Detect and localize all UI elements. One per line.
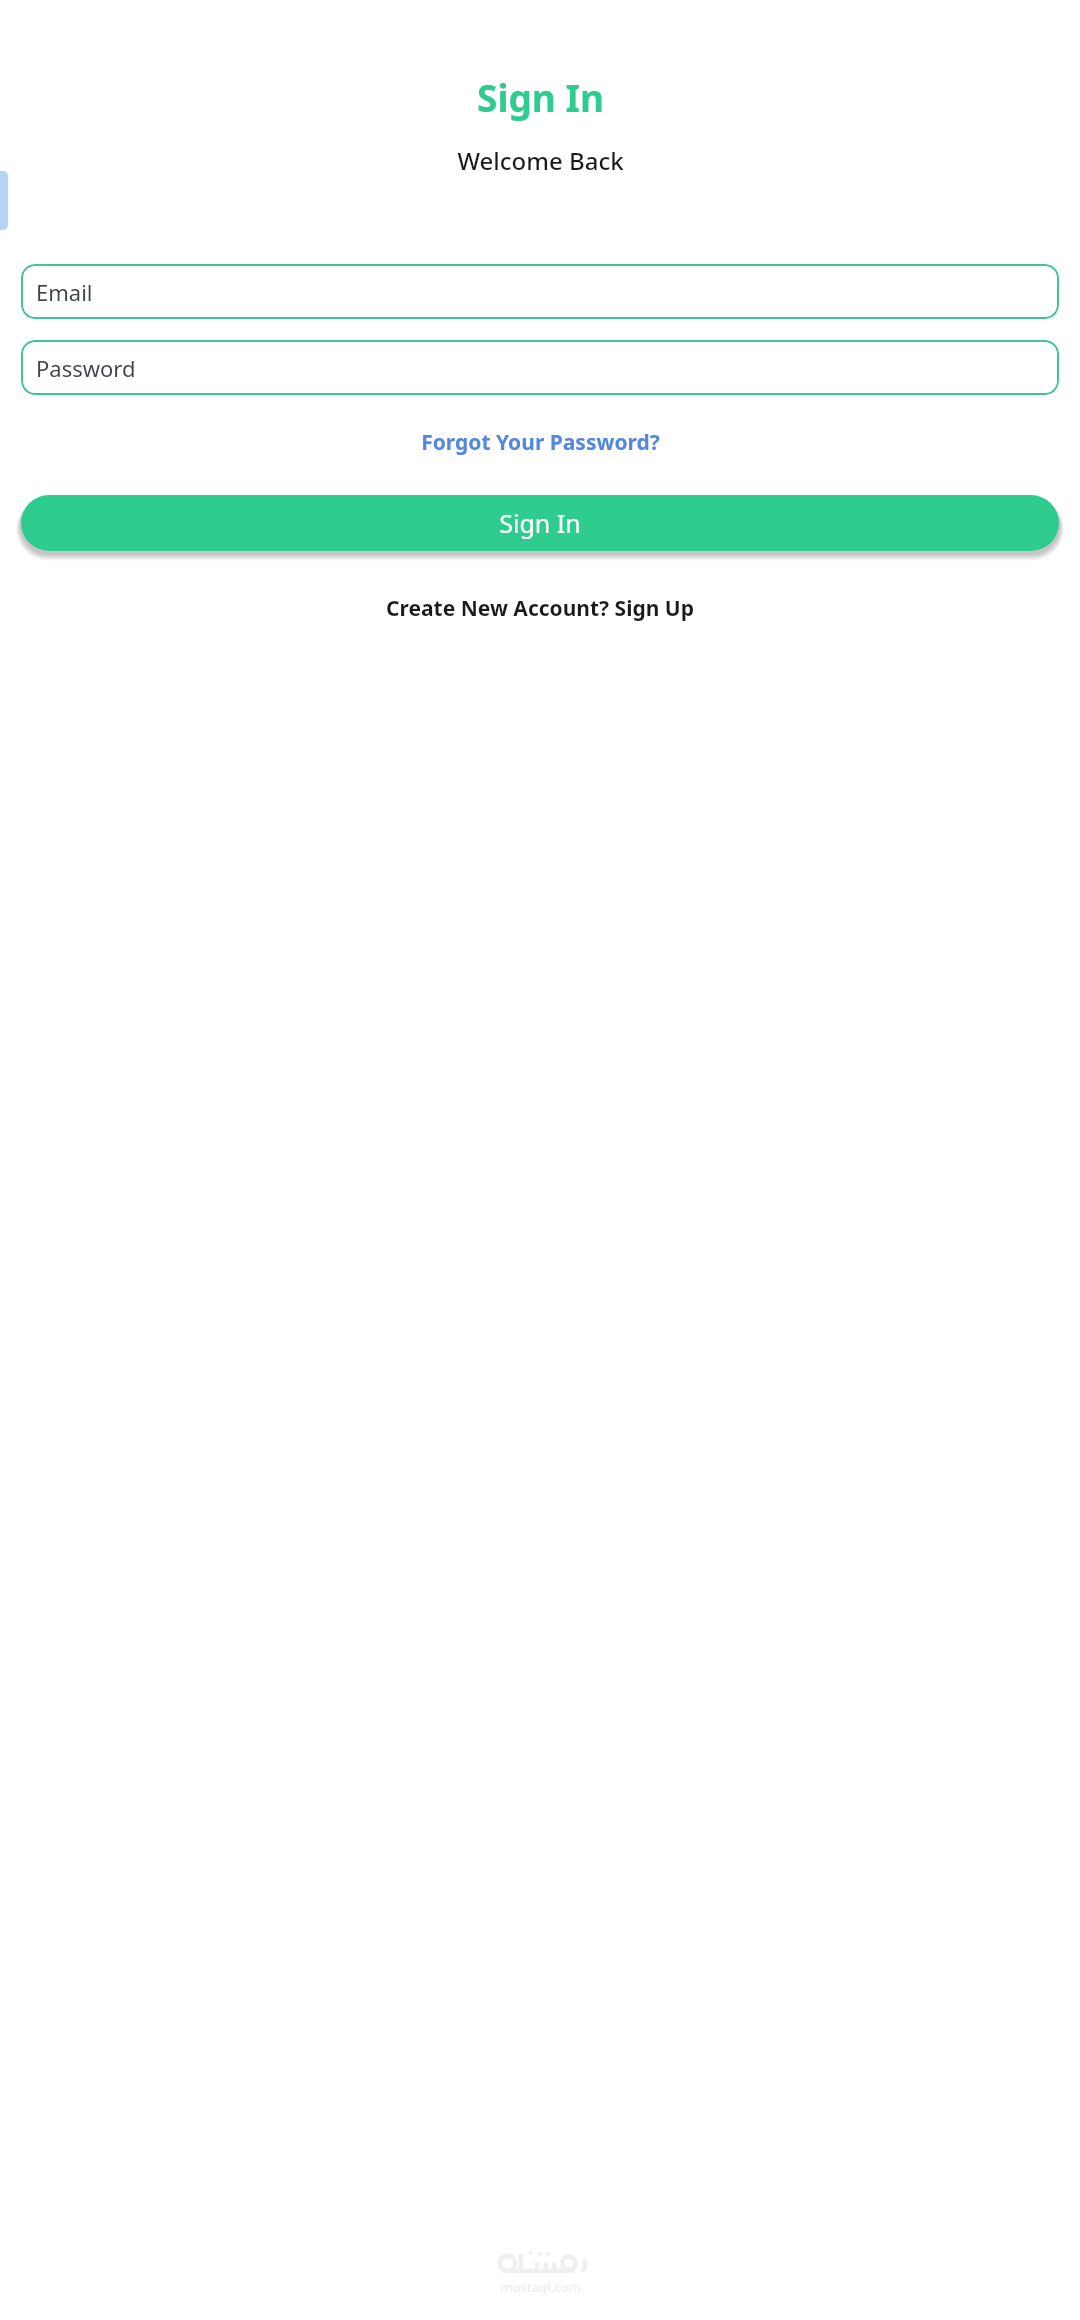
button[interactable]: Sign In bbox=[21, 495, 1059, 551]
staticText: Create New Account? Sign Up bbox=[386, 594, 694, 623]
button[interactable]: Email input field bbox=[21, 264, 1059, 319]
button[interactable]: Forgot Your Password? bbox=[411, 422, 670, 463]
staticText: Sign In bbox=[477, 72, 604, 122]
staticText: Email bbox=[36, 277, 93, 307]
staticText: mostaql.com bbox=[500, 2278, 581, 2296]
staticText: Sign In bbox=[499, 506, 581, 540]
staticText: Forgot Your Password? bbox=[421, 428, 660, 457]
button[interactable]: Create New Account? Sign Up bbox=[376, 588, 704, 629]
staticText: Password bbox=[36, 353, 136, 383]
staticText: Welcome Back bbox=[457, 144, 624, 177]
button[interactable]: Password input field bbox=[21, 340, 1059, 395]
